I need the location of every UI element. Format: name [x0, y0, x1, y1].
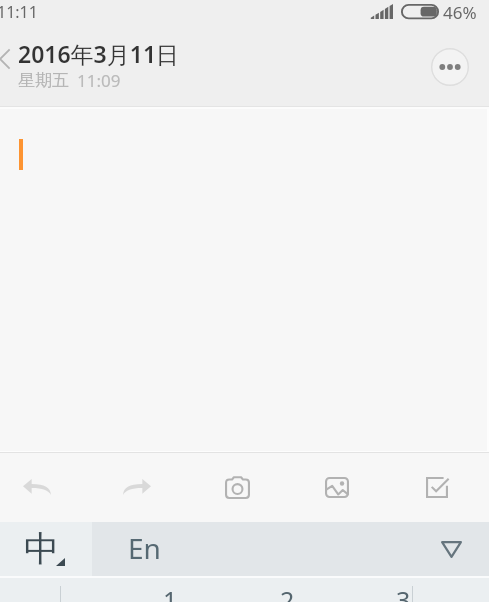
button[interactable]: 3 [363, 578, 443, 602]
staticText: 3 [396, 583, 411, 602]
staticText: 11:11 [0, 1, 38, 23]
staticText: 46% [443, 1, 477, 24]
button[interactable]: Camera [213, 463, 261, 511]
button[interactable]: Redo [113, 463, 161, 511]
staticText: 中 [24, 527, 59, 571]
staticText: 11:09 [77, 69, 121, 92]
staticText: En [128, 529, 161, 567]
button[interactable]: More options [430, 47, 470, 87]
button[interactable]: Back [0, 41, 14, 71]
staticText: 2016年3月11日 [18, 38, 180, 69]
staticText: 2 [280, 583, 295, 602]
staticText: 1 [163, 583, 178, 602]
button[interactable]: Image [313, 463, 361, 511]
button[interactable]: 1 [130, 578, 210, 602]
button[interactable]: Checklist [413, 463, 461, 511]
button[interactable]: 中 [0, 522, 92, 576]
button[interactable]: 2 [247, 578, 327, 602]
staticText: 星期五 [18, 70, 69, 91]
button[interactable]: En [92, 522, 489, 576]
button[interactable]: Undo [13, 463, 61, 511]
button[interactable]: Hide keyboard [429, 527, 473, 571]
